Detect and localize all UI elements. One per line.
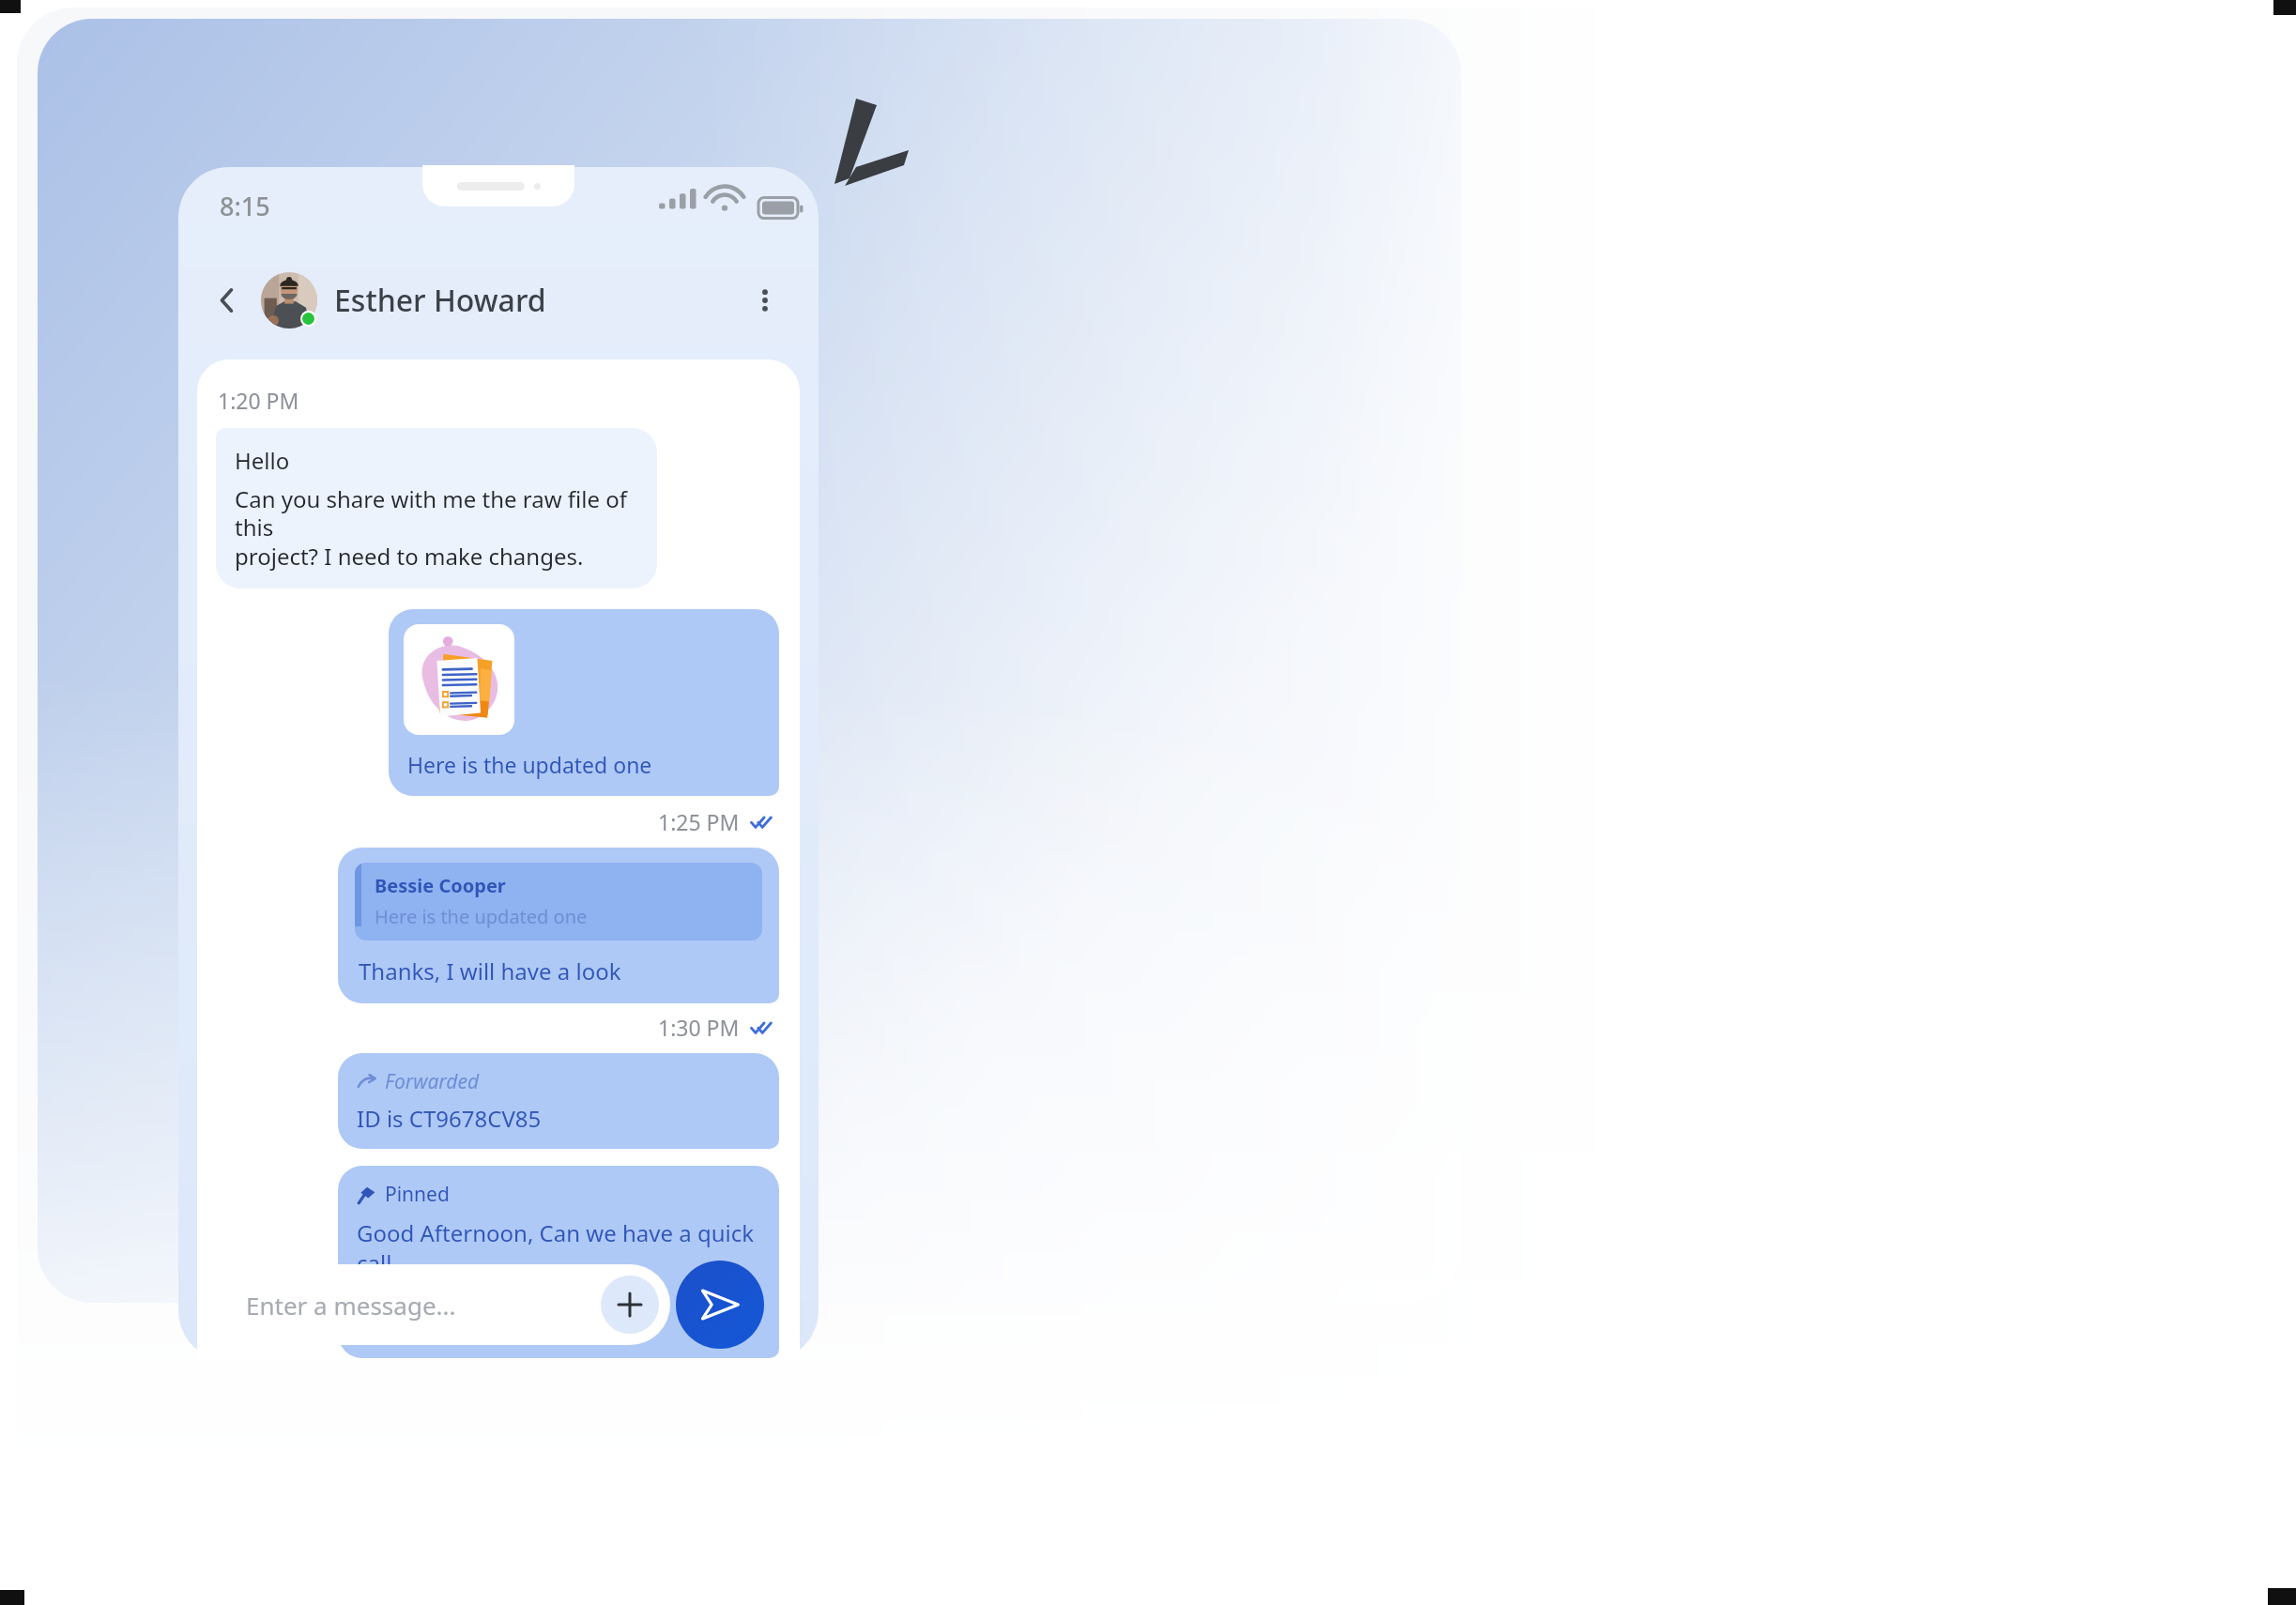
button[interactable]: More options: [743, 279, 787, 322]
button[interactable]: Pinned: [338, 1166, 779, 1358]
staticText: Thanks, I will have a look: [359, 955, 621, 986]
staticText: ID is CT9678CV85: [357, 1103, 542, 1134]
staticText: 1:20 PM: [218, 386, 299, 415]
button[interactable]: Send: [676, 1261, 764, 1349]
staticText: 1:25 PM: [658, 807, 740, 836]
button[interactable]: Here is the updated one: [389, 609, 779, 796]
button[interactable]: Esther Howard profile photo: [261, 272, 317, 329]
button[interactable]: Back: [205, 278, 250, 323]
staticText: Here is the updated one: [407, 750, 652, 779]
staticText: Hello: [235, 445, 290, 476]
button[interactable]: Attach: [601, 1276, 659, 1334]
staticText: Enter a message...: [246, 1289, 456, 1322]
button[interactable]: Enter a message...: [218, 1264, 670, 1345]
button[interactable]: Hello: [216, 428, 657, 588]
staticText: 8:15: [220, 189, 270, 223]
staticText: Good Afternoon, Can we have a quick call…: [357, 1217, 760, 1308]
staticText: Bessie Cooper: [375, 873, 506, 898]
staticText: Here is the updated one: [375, 904, 588, 929]
staticText: Edited 40 minutes ago`: [357, 1316, 558, 1343]
staticText: Pinned: [385, 1181, 450, 1208]
button[interactable]: Forwarded: [338, 1053, 779, 1149]
button[interactable]: Bessie Cooper: [338, 848, 779, 1003]
staticText: Can you share with me the raw file of th…: [235, 483, 638, 572]
staticText: 1:30 PM: [658, 1013, 740, 1042]
button[interactable]: Esther Howard: [334, 280, 546, 321]
staticText: Forwarded: [385, 1068, 480, 1095]
